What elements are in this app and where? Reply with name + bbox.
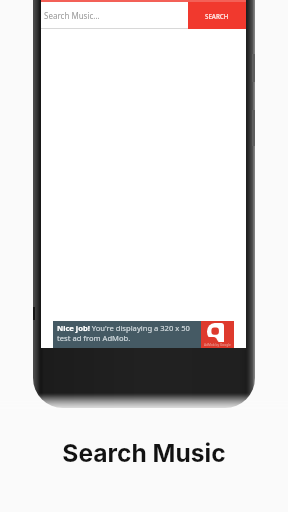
button[interactable]: Nice job! You're displaying a 320 x 50 <box>53 321 234 348</box>
button[interactable]: Search Music... <box>41 2 188 29</box>
staticText: Nice job! You're displaying a 320 x 50 <box>57 323 190 333</box>
staticText: SEARCH <box>205 12 229 20</box>
staticText: Search Music... <box>44 10 100 21</box>
staticText: test ad from AdMob. <box>57 333 131 343</box>
staticText: AdMob by Google <box>204 343 231 347</box>
button[interactable]: SEARCH <box>188 2 246 29</box>
staticText: Search Music <box>62 438 226 468</box>
